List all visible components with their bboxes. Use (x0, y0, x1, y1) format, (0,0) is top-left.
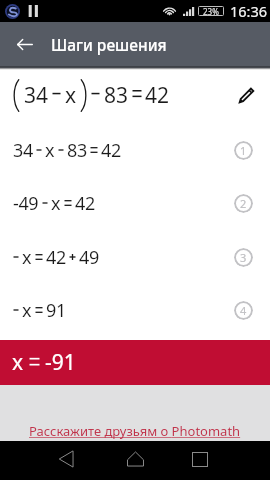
staticText: x (22, 298, 32, 323)
button[interactable]: Back (0, 22, 49, 66)
staticText: 2 (240, 196, 247, 211)
staticText: 42 (75, 191, 95, 216)
button[interactable]: x (0, 230, 270, 284)
staticText: 16:36 (230, 1, 268, 21)
staticText: 42 (46, 245, 66, 270)
button[interactable]: -49 (0, 176, 270, 230)
button[interactable]: 34 (0, 123, 270, 177)
staticText: x (51, 191, 61, 216)
staticText: 42 (145, 81, 170, 110)
staticText: 42 (101, 138, 121, 163)
staticText: x (12, 348, 24, 377)
staticText: 4 (240, 303, 247, 318)
staticText: Расскажите друзьям о Photomath (29, 422, 241, 440)
button[interactable]: Back (44, 441, 88, 477)
staticText: 23% (203, 6, 219, 16)
button[interactable]: Home (113, 441, 157, 477)
staticText: 91 (46, 298, 66, 323)
staticText: Шаги решения (51, 34, 167, 55)
staticText: x (22, 245, 32, 270)
staticText: 83 (67, 138, 87, 163)
staticText: 49 (79, 245, 99, 270)
staticText: -49 (13, 191, 39, 216)
staticText: 1 (240, 143, 247, 158)
staticText: 34 (24, 81, 49, 110)
staticText: 3 (240, 250, 247, 265)
staticText: -91 (45, 348, 76, 377)
staticText: x (45, 138, 55, 163)
button[interactable]: x (0, 283, 270, 337)
button[interactable]: Расскажите друзьям о Photomath (29, 422, 241, 440)
button[interactable]: Recents (178, 441, 222, 477)
staticText: x (65, 81, 77, 110)
staticText: 83 (104, 81, 129, 110)
button[interactable]: Edit (231, 80, 261, 110)
staticText: 34 (13, 138, 33, 163)
